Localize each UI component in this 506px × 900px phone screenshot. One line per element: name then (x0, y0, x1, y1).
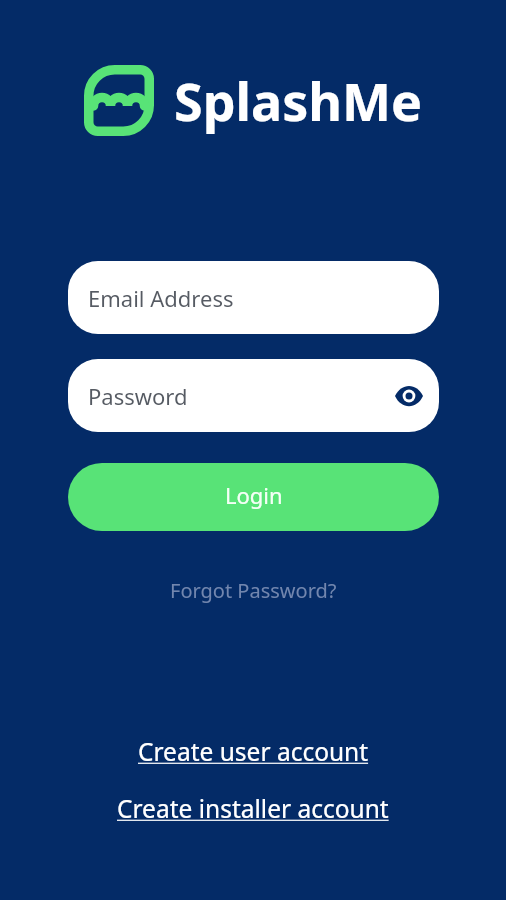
button[interactable]: Create installer account (117, 792, 389, 825)
button[interactable]: Create user account (138, 735, 369, 768)
button[interactable]: Login (68, 463, 439, 531)
staticText: Email Address (88, 283, 234, 313)
staticText: Password (88, 381, 395, 411)
staticText: Login (225, 480, 283, 510)
staticText: SplashMe (174, 65, 423, 136)
button[interactable]: Email Address (68, 261, 439, 334)
button[interactable]: Password (68, 359, 439, 432)
button[interactable]: Forgot Password? (170, 577, 337, 604)
